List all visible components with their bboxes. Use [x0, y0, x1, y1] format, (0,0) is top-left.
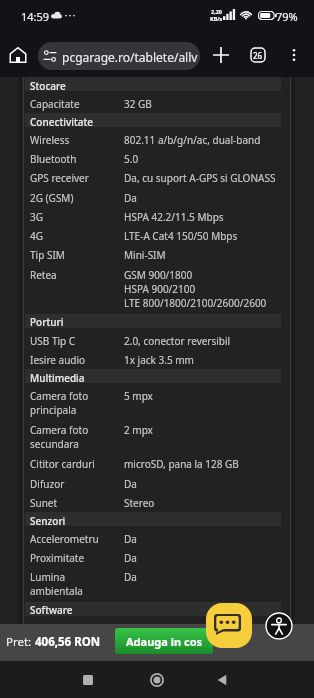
button[interactable]: Accessibility	[263, 610, 294, 641]
staticText: Porturi	[30, 315, 64, 329]
staticText: Da	[124, 570, 137, 584]
staticText: 5.0	[124, 152, 139, 166]
staticText: Bluetooth	[30, 152, 77, 166]
staticText: 406,56 RON	[35, 634, 101, 650]
staticText: principala	[30, 403, 77, 417]
staticText: 4G	[30, 229, 43, 243]
staticText: Retea	[30, 268, 57, 282]
button[interactable]: Back	[202, 661, 242, 698]
staticText: Camera foto	[30, 423, 89, 437]
staticText: 2G (GSM)	[30, 191, 74, 205]
staticText: Conectivitate	[30, 115, 93, 129]
staticText: Accelerometru	[30, 532, 99, 546]
staticText: LTE 800/1800/2100/2600/2600	[124, 296, 267, 310]
staticText: Da	[124, 477, 137, 491]
staticText: pcgarage.ro/tablete/allv	[62, 49, 198, 65]
staticText: Multimedia	[30, 371, 85, 385]
staticText: Tip SIM	[30, 248, 65, 262]
staticText: Iesire audio	[30, 353, 86, 367]
staticText: HSPA 900/2100	[124, 282, 196, 296]
staticText: Da, cu suport A-GPS si GLONASS	[124, 171, 276, 185]
staticText: Sunet	[30, 496, 58, 510]
button[interactable]: More options	[280, 41, 308, 69]
button[interactable]: Home	[3, 40, 33, 70]
staticText: 26	[253, 50, 263, 61]
staticText: 3G	[30, 210, 43, 224]
staticText: Da	[124, 532, 137, 546]
staticText: 2,20	[211, 8, 223, 15]
button[interactable]: Home	[137, 661, 177, 698]
staticText: Senzori	[30, 514, 66, 528]
button[interactable]: New tab	[205, 39, 237, 71]
staticText: Mini-SIM	[124, 248, 166, 262]
staticText: Wireless	[30, 133, 70, 147]
button[interactable]: Tabs	[242, 39, 274, 71]
staticText: 5 mpx	[124, 389, 153, 403]
staticText: 2.0, conector reversibil	[124, 334, 231, 348]
staticText: secundara	[30, 437, 79, 451]
staticText: LTE-A Cat4 150/50 Mbps	[124, 229, 238, 243]
staticText: Stocare	[30, 79, 66, 93]
staticText: HSPA 42.2/11.5 Mbps	[124, 210, 224, 224]
staticText: Software	[30, 603, 73, 617]
staticText: Proximitate	[30, 551, 85, 565]
staticText: Camera foto	[30, 389, 89, 403]
button[interactable]: Recent apps	[68, 661, 108, 698]
staticText: Capacitate	[30, 97, 80, 111]
staticText: KB/s	[210, 15, 223, 22]
button[interactable]: Pret:	[6, 633, 101, 651]
staticText: Cititor carduri	[30, 457, 95, 471]
staticText: Difuzor	[30, 477, 65, 491]
staticText: 79%	[276, 9, 298, 24]
button[interactable]: Adauga in cos	[115, 628, 213, 654]
staticText: 802.11 a/b/g/n/ac, dual-band	[124, 133, 261, 147]
staticText: USB Tip C	[30, 334, 76, 348]
staticText: Pret:	[6, 634, 35, 650]
staticText: Lumina	[30, 570, 66, 584]
staticText: GPS receiver	[30, 171, 89, 185]
staticText: Da	[124, 551, 137, 565]
staticText: Da	[124, 191, 137, 205]
staticText: GSM 900/1800	[124, 268, 193, 282]
button[interactable]: pcgarage.ro/tablete/allv	[38, 42, 200, 70]
button[interactable]: Chat	[206, 603, 252, 648]
staticText: Stereo	[124, 496, 155, 510]
staticText: 32 GB	[124, 97, 152, 111]
staticText: ambientala	[30, 584, 83, 598]
staticText: 1x jack 3.5 mm	[124, 353, 194, 367]
staticText: microSD, pana la 128 GB	[124, 457, 239, 471]
staticText: 2 mpx	[124, 423, 153, 437]
staticText: 14:59	[21, 9, 50, 24]
staticText: Adauga in cos	[126, 634, 203, 649]
